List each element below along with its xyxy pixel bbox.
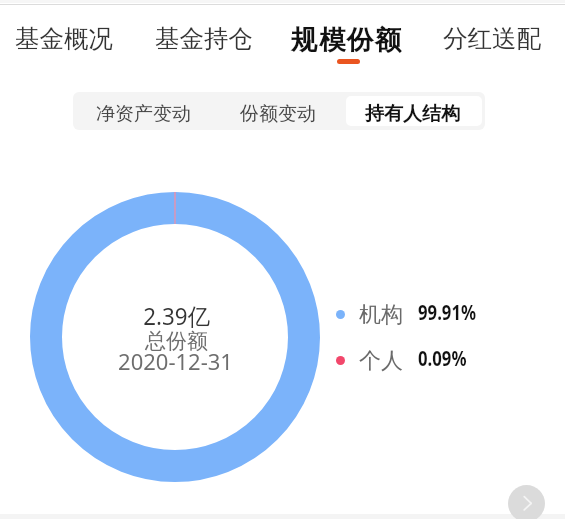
staticText: 净资产变动 [96,102,191,126]
staticText: 分红送配 [443,23,541,54]
button[interactable]: 规模份额 [291,23,403,64]
button[interactable]: 机构 [330,297,490,329]
staticText: 基金概况 [15,23,113,54]
button[interactable]: 持有人结构 [353,99,472,129]
button[interactable]: 基金持仓 [155,23,253,54]
staticText: 2020-12-31 [118,346,233,376]
staticText: 基金持仓 [155,23,253,54]
button[interactable]: 基金概况 [15,23,113,54]
staticText: 0.09% [418,342,467,372]
button[interactable]: 个人 [330,343,490,375]
staticText: 机构 [359,301,403,329]
button[interactable]: 分红送配 [443,23,541,54]
staticText: 持有人结构 [365,102,460,126]
button[interactable]: 份额变动 [228,99,328,129]
button[interactable]: 净资产变动 [84,99,203,129]
staticText: 99.91% [418,296,476,326]
staticText: 2.39亿 [143,300,210,332]
staticText: 总份额 [145,328,208,354]
staticText: 份额变动 [240,102,316,126]
staticText: 个人 [359,347,403,375]
button[interactable]: Next [508,485,545,519]
staticText: 规模份额 [291,23,403,56]
